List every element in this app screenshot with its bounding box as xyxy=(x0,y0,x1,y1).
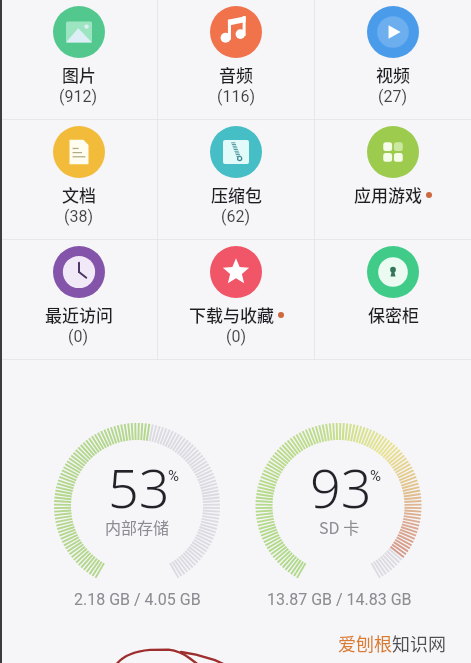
staticText: (116) xyxy=(217,87,256,106)
button[interactable]: 视频 xyxy=(315,0,471,119)
staticText: 音频 xyxy=(219,62,253,87)
staticText: 压缩包 xyxy=(211,182,262,207)
staticText: (912) xyxy=(59,87,98,106)
button[interactable]: 保密柜 xyxy=(315,240,471,359)
button[interactable]: 图片 xyxy=(0,0,157,119)
staticText: 知识网 xyxy=(392,630,446,656)
staticText: SD 卡 xyxy=(319,515,360,538)
staticText: 应用游戏 xyxy=(354,182,422,207)
staticText: 下载与收藏 xyxy=(189,302,274,327)
staticText: 93 xyxy=(310,450,372,524)
staticText: (0) xyxy=(68,327,89,346)
staticText: (62) xyxy=(221,207,251,226)
staticText: 保密柜 xyxy=(368,302,419,327)
staticText: 2.18 GB / 4.05 GB xyxy=(74,590,201,609)
staticText: 爱刨根 xyxy=(338,630,392,656)
staticText: 最近访问 xyxy=(45,302,113,327)
button[interactable]: 最近访问 xyxy=(0,240,157,359)
staticText: 视频 xyxy=(376,62,410,87)
staticText: 53 xyxy=(108,450,170,524)
staticText: 13.87 GB / 14.83 GB xyxy=(267,590,412,609)
staticText: (38) xyxy=(64,207,94,226)
staticText: % xyxy=(168,467,179,485)
button[interactable]: 应用游戏 xyxy=(315,120,471,239)
staticText: (27) xyxy=(378,87,408,106)
staticText: 图片 xyxy=(62,62,96,87)
staticText: % xyxy=(370,467,381,485)
staticText: 内部存储 xyxy=(105,515,170,538)
button[interactable]: 下载与收藏 xyxy=(158,240,314,359)
button[interactable]: 音频 xyxy=(158,0,314,119)
button[interactable]: 文档 xyxy=(0,120,157,239)
button[interactable]: 压缩包 xyxy=(158,120,314,239)
staticText: (0) xyxy=(226,327,247,346)
staticText: 文档 xyxy=(62,182,96,207)
